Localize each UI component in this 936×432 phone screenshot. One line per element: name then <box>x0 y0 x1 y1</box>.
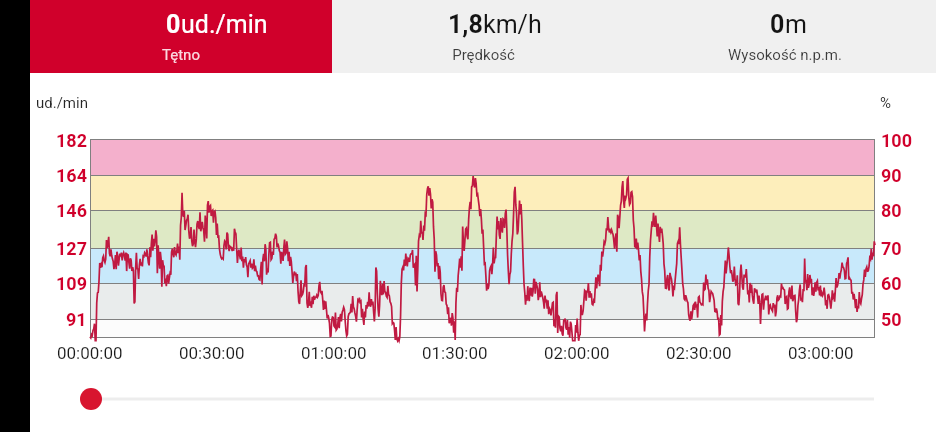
staticText: ud./min <box>36 94 88 112</box>
staticText: Wysokość n.p.m. <box>728 46 842 64</box>
staticText: 91 <box>66 309 87 330</box>
staticText: 127 <box>56 238 87 259</box>
staticText: 03:00:00 <box>788 343 854 363</box>
staticText: 02:00:00 <box>544 343 610 363</box>
staticText: 01:30:00 <box>422 343 488 363</box>
staticText: km/h <box>483 10 542 39</box>
staticText: 109 <box>56 273 87 294</box>
staticText: 70 <box>881 238 902 259</box>
staticText: m <box>785 10 807 39</box>
staticText: Prędkość <box>452 46 515 64</box>
staticText: 60 <box>881 273 902 294</box>
staticText: 00:00:00 <box>57 343 123 363</box>
button[interactable]: 1,8 <box>332 0 634 73</box>
staticText: 02:30:00 <box>666 343 732 363</box>
staticText: 0 <box>770 10 785 39</box>
button[interactable]: 0 <box>30 0 332 73</box>
staticText: 164 <box>56 165 87 186</box>
staticText: 90 <box>881 165 902 186</box>
staticText: 1,8 <box>448 10 483 39</box>
staticText: 182 <box>56 130 87 151</box>
staticText: 146 <box>56 200 87 221</box>
staticText: 100 <box>881 130 912 151</box>
staticText: 50 <box>881 309 902 330</box>
staticText: Tętno <box>162 46 200 64</box>
staticText: 0 <box>166 10 181 39</box>
button[interactable]: Playback position <box>80 388 102 410</box>
staticText: 00:30:00 <box>179 343 245 363</box>
staticText: 01:00:00 <box>301 343 367 363</box>
staticText: ud./min <box>181 10 268 39</box>
button[interactable]: 0 <box>634 0 936 73</box>
staticText: % <box>880 94 891 112</box>
staticText: 80 <box>881 200 902 221</box>
